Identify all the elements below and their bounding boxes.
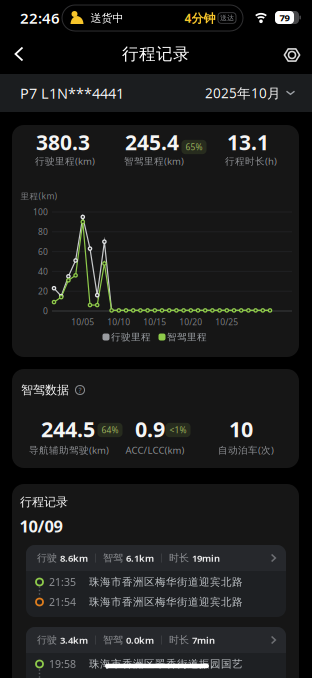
staticText: 行程记录: [122, 44, 190, 64]
button[interactable]: P7 L1N***4441: [20, 83, 124, 103]
staticText: 21:35: [49, 575, 76, 589]
staticText: 里程(km): [20, 190, 57, 202]
staticText: 0.0km: [126, 634, 154, 646]
staticText: ACC/LCC(km): [125, 444, 184, 456]
button[interactable]: 行驶: [26, 545, 286, 617]
staticText: 行驶: [37, 634, 57, 646]
staticText: 导航辅助驾驶(km): [29, 444, 109, 456]
staticText: 10/05: [71, 316, 94, 328]
staticText: 智驾: [103, 634, 123, 646]
staticText: 20: [38, 286, 48, 297]
staticText: 64%: [101, 424, 118, 436]
staticText: 智驾里程: [167, 331, 207, 343]
staticText: 10/09: [19, 515, 62, 537]
staticText: 4分钟: [184, 10, 215, 26]
staticText: 65%: [185, 141, 202, 153]
staticText: 珠海市香洲区翠香街道振园国艺: [89, 657, 243, 670]
staticText: 244.5: [41, 415, 95, 443]
staticText: 珠海市香洲区梅华街道迎宾北路: [89, 595, 243, 608]
staticText: 60: [38, 246, 48, 257]
staticText: 行驶里程: [111, 331, 151, 343]
staticText: 行程记录: [20, 495, 68, 509]
staticText: 10/25: [215, 316, 238, 328]
staticText: 19:58: [49, 657, 76, 671]
staticText: 80: [38, 226, 48, 237]
staticText: 10/20: [179, 316, 202, 328]
staticText: 智驾: [103, 552, 123, 564]
staticText: 6.1km: [126, 552, 154, 564]
staticText: 时长: [169, 634, 189, 646]
staticText: 智驾里程(km): [124, 155, 184, 167]
staticText: 3.4km: [60, 634, 88, 646]
staticText: 10: [229, 415, 253, 443]
button[interactable]: Help: [71, 381, 88, 399]
staticText: 10/10: [107, 316, 130, 328]
staticText: 时长: [169, 552, 189, 564]
button[interactable]: Settings: [277, 40, 307, 69]
staticText: 8.6km: [60, 552, 88, 564]
staticText: 行驶: [37, 552, 57, 564]
staticText: <1%: [169, 424, 186, 436]
staticText: 7min: [192, 634, 215, 646]
staticText: 245.4: [125, 128, 179, 156]
staticText: 行程时长(h): [225, 155, 277, 167]
staticText: 22:46: [20, 8, 60, 28]
staticText: 送达: [220, 14, 234, 22]
staticText: 2025年10月: [205, 84, 281, 102]
staticText: 0.9: [135, 415, 165, 443]
staticText: 19min: [192, 552, 220, 564]
staticText: 自动泊车(次): [218, 444, 274, 456]
staticText: 100: [33, 206, 48, 218]
staticText: ?: [78, 385, 81, 395]
staticText: 79: [279, 11, 289, 24]
staticText: 智驾数据: [21, 383, 69, 397]
staticText: 13.1: [227, 128, 269, 156]
button[interactable]: 2025年10月: [205, 84, 295, 102]
button[interactable]: Back: [6, 38, 32, 69]
button[interactable]: 行驶: [26, 627, 286, 678]
staticText: 行驶里程(km): [35, 155, 95, 167]
staticText: 送货中: [90, 11, 123, 25]
staticText: 珠海市香洲区梅华街道迎宾北路: [89, 575, 243, 588]
staticText: 21:54: [49, 595, 76, 609]
staticText: P7 L1N***4441: [20, 83, 124, 103]
staticText: 10/15: [143, 316, 166, 328]
staticText: 380.3: [36, 128, 90, 156]
staticText: 0: [43, 305, 48, 317]
staticText: 40: [38, 266, 48, 277]
